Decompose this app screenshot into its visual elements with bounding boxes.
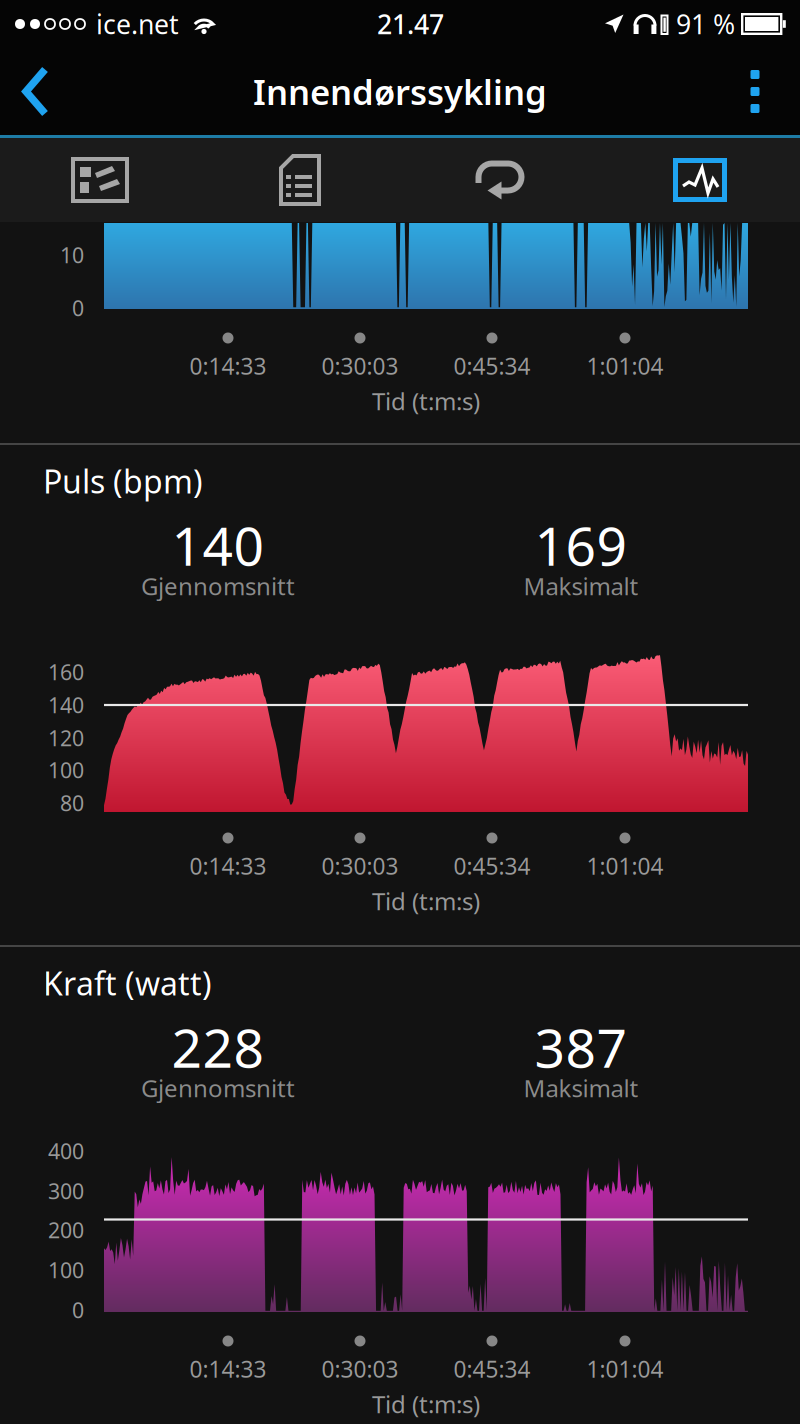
staticText: 91 % [676,6,735,42]
staticText: 100 [48,1256,84,1284]
staticText: 0:14:33 [189,351,266,381]
staticText: Tid (t:m:s) [372,885,480,917]
staticText: 387 [534,1012,627,1082]
staticText: Puls (bpm) [43,460,203,502]
staticText: 1:01:04 [586,351,663,381]
staticText: ice.net [96,6,179,42]
staticText: 10 [60,241,84,269]
staticText: Gjennomsnitt [141,1072,295,1104]
staticText: 0:30:03 [321,351,398,381]
staticText: 100 [48,756,84,784]
staticText: 0:14:33 [189,851,266,881]
staticText: 0:30:03 [321,1354,398,1384]
staticText: 0:45:34 [453,351,530,381]
staticText: 300 [48,1177,84,1205]
button[interactable]: Laps [400,138,600,222]
staticText: 200 [48,1216,84,1244]
staticText: 0:14:33 [189,1354,266,1384]
staticText: 0:30:03 [321,851,398,881]
staticText: Innendørssykling [253,68,547,114]
staticText: 120 [48,724,84,752]
staticText: Maksimalt [523,1072,638,1104]
button[interactable]: Map [0,138,200,222]
staticText: Kraft (watt) [43,962,212,1004]
staticText: Gjennomsnitt [141,570,295,602]
staticText: 0 [72,1296,84,1324]
button[interactable]: Charts [600,138,800,222]
staticText: 140 [171,510,264,580]
staticText: 140 [48,691,84,719]
staticText: 400 [48,1137,84,1165]
button[interactable]: Summary [200,138,400,222]
button[interactable]: More options [724,51,786,131]
button[interactable]: Back [8,51,66,131]
staticText: 0:45:34 [453,1354,530,1384]
staticText: 80 [60,789,84,817]
staticText: Tid (t:m:s) [372,385,480,417]
staticText: 228 [171,1012,264,1082]
staticText: 160 [48,658,84,686]
staticText: 169 [534,510,627,580]
staticText: 21.47 [377,6,444,42]
staticText: 0:45:34 [453,851,530,881]
staticText: 0 [72,294,84,322]
staticText: 1:01:04 [586,851,663,881]
staticText: Tid (t:m:s) [372,1388,480,1420]
staticText: 1:01:04 [586,1354,663,1384]
staticText: Maksimalt [523,570,638,602]
